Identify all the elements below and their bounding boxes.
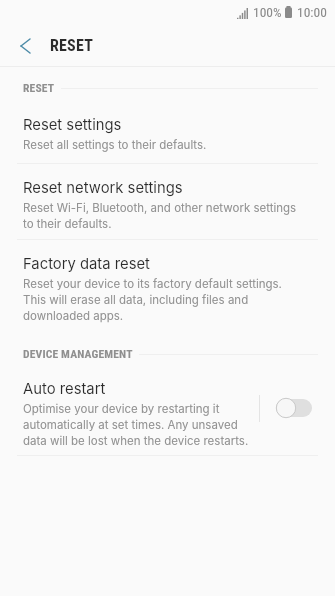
button[interactable]: Reset settings [0,95,335,163]
staticText: RESET [23,81,55,95]
staticText: 10:00 [297,4,327,20]
staticText: Auto restart [23,380,106,398]
staticText: Reset network settings [23,179,183,197]
button[interactable]: Navigate up [0,24,50,67]
staticText: Optimise your device by restarting it au… [23,400,250,448]
staticText: Reset settings [23,116,122,134]
button[interactable]: Auto restart [0,361,335,455]
staticText: RESET [50,36,94,55]
staticText: DEVICE MANAGEMENT [23,347,133,361]
staticText: Reset all settings to their defaults. [23,136,207,152]
button[interactable]: Auto restart switch, off [260,384,335,432]
staticText: 100% [253,4,282,20]
staticText: Reset Wi-Fi, Bluetooth, and other networ… [23,199,303,231]
staticText: Factory data reset [23,255,150,273]
button[interactable]: Factory data reset [0,240,335,336]
staticText: Reset your device to its factory default… [23,275,303,323]
button[interactable]: Reset network settings [0,164,335,239]
